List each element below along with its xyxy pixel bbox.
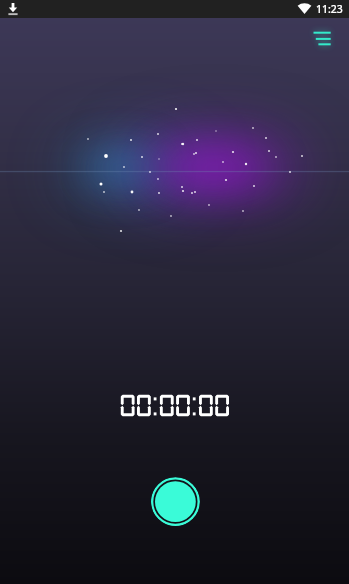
button[interactable]: Menu [301, 18, 349, 66]
button[interactable]: Start timer [151, 477, 200, 526]
staticText: 11:23 [316, 2, 343, 16]
